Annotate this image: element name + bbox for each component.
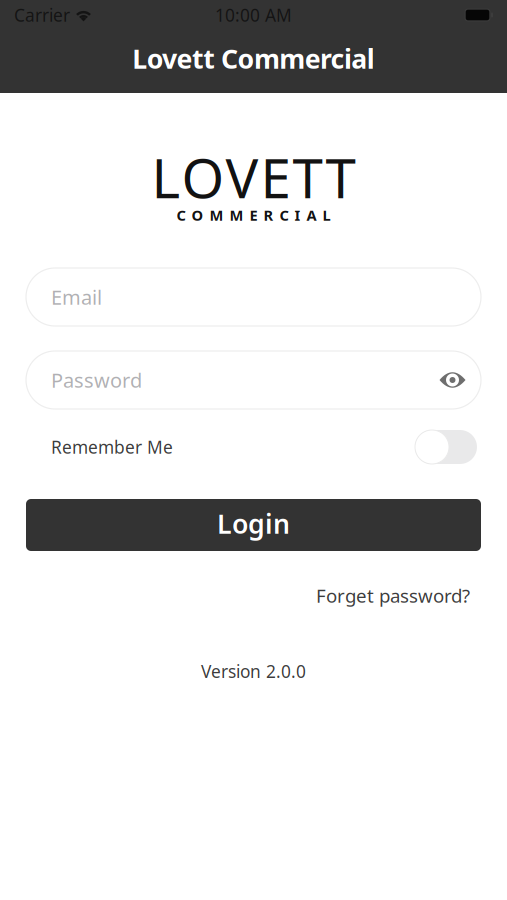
button[interactable]: Show password xyxy=(439,370,481,389)
button[interactable]: Password xyxy=(26,351,481,409)
staticText: Email xyxy=(51,284,102,310)
button[interactable]: Remember Me xyxy=(415,430,481,464)
staticText: 10:00 AM xyxy=(215,3,292,26)
staticText: Password xyxy=(51,367,142,393)
staticText: Lovett Commercial xyxy=(132,41,375,76)
staticText: Carrier xyxy=(14,3,70,26)
staticText: COMMERCIAL xyxy=(176,205,330,225)
staticText: LOVETT xyxy=(151,141,355,213)
button[interactable]: Email xyxy=(26,268,481,326)
button[interactable]: Forget password? xyxy=(316,583,481,608)
staticText: Version 2.0.0 xyxy=(201,660,306,683)
button[interactable]: Login xyxy=(26,499,481,551)
staticText: Remember Me xyxy=(51,435,173,458)
staticText: Forget password? xyxy=(316,583,470,608)
staticText: Login xyxy=(217,506,290,541)
